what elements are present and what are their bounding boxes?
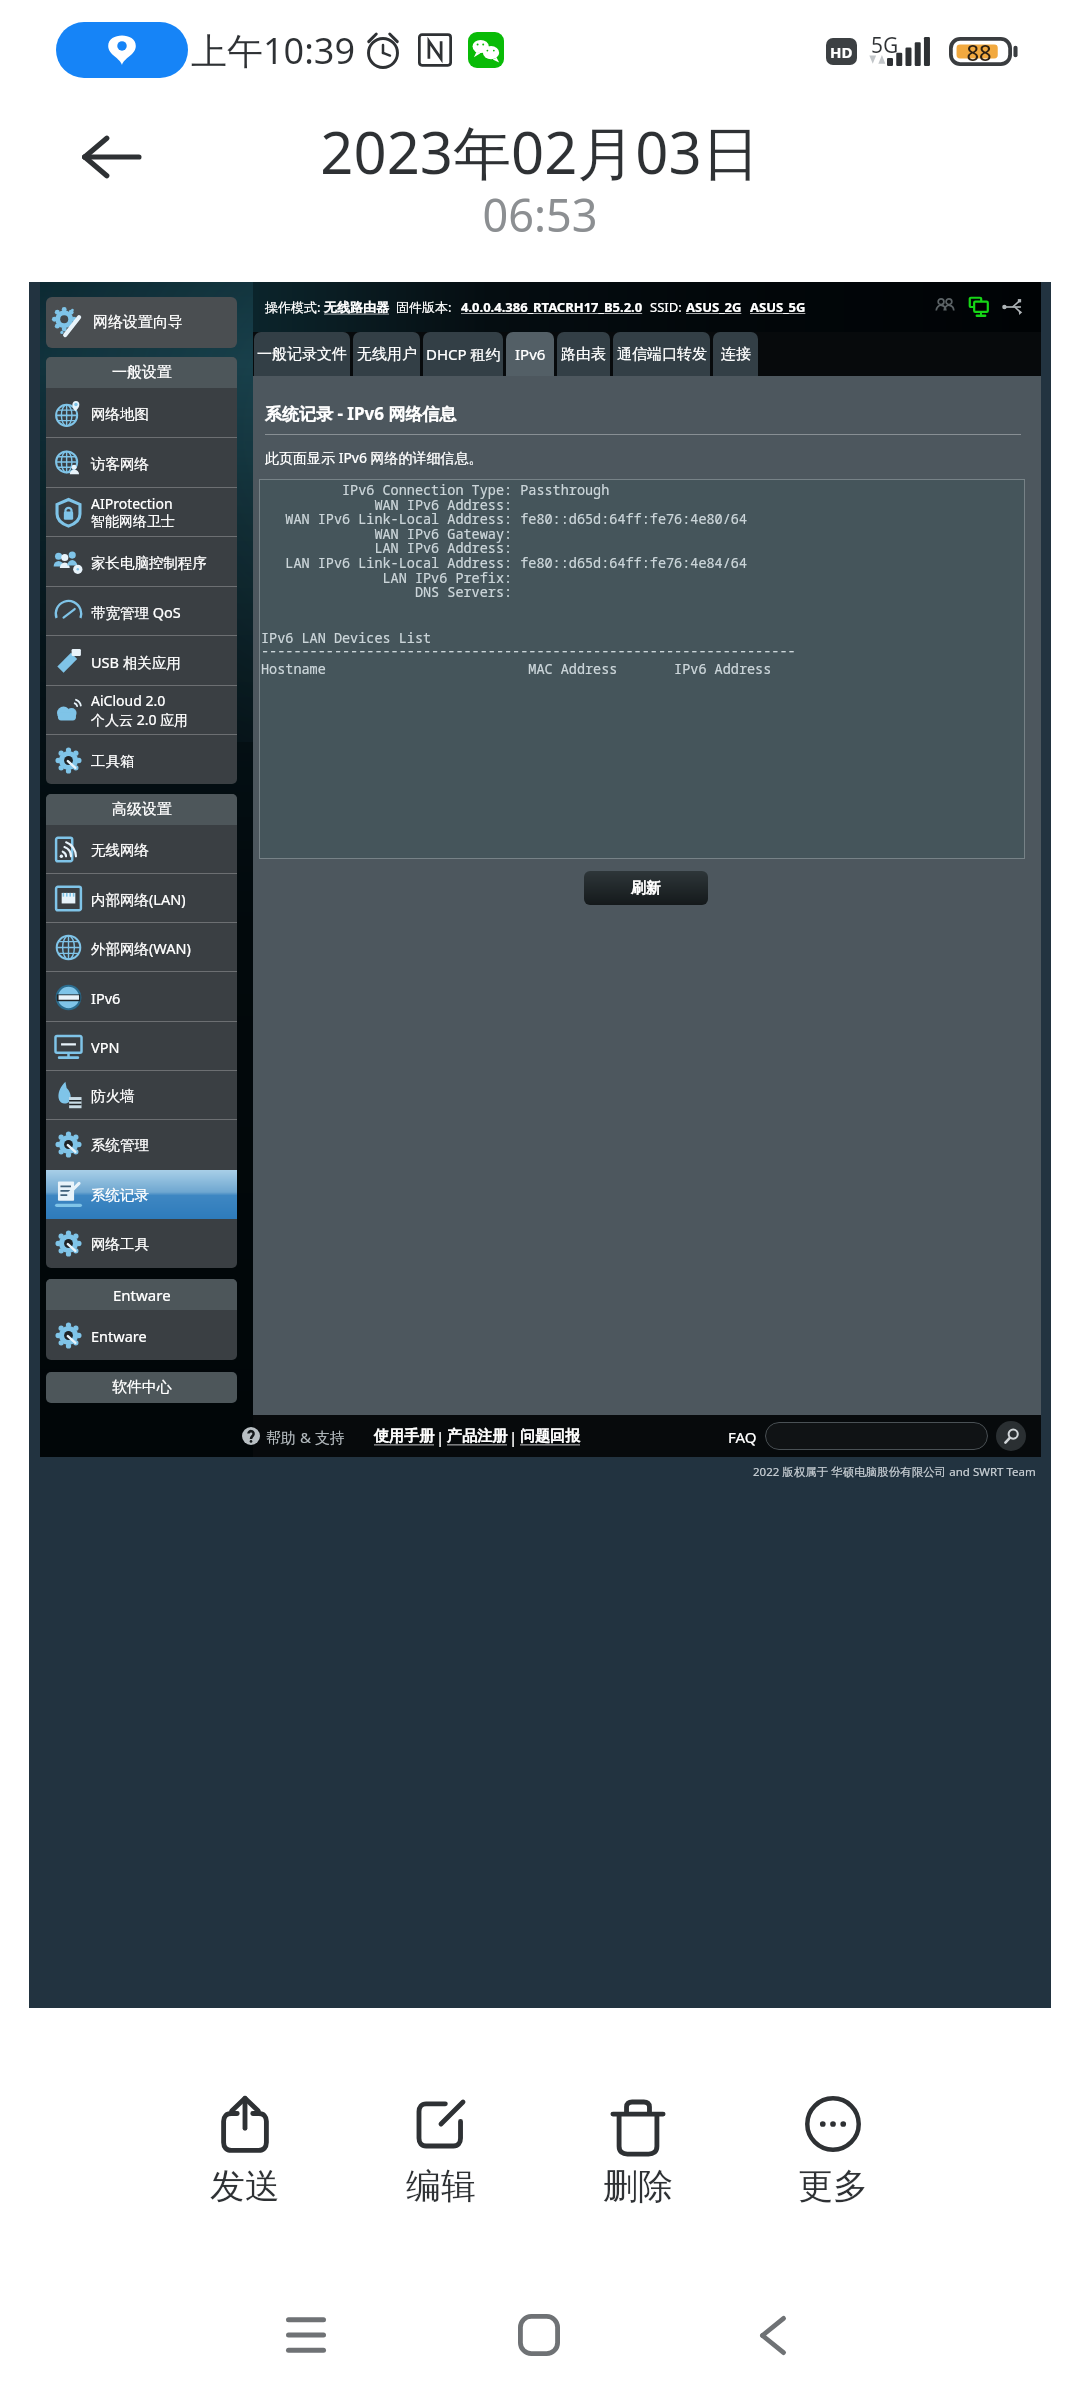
button[interactable]: 带宽管理 QoS <box>46 586 237 636</box>
button[interactable]: 通信端口转发 <box>613 332 710 376</box>
staticText: 4.0.0.4.386_RTACRH17_B5.2.0 <box>461 298 643 316</box>
staticText: 88 <box>966 37 992 66</box>
staticText: SSID: <box>650 298 686 316</box>
button[interactable]: 一般记录文件 <box>254 332 350 376</box>
staticText: 使用手册 <box>374 1427 434 1446</box>
staticText: IPv6 LAN Devices List <box>261 629 432 647</box>
staticText: 刷新 <box>631 879 661 898</box>
staticText: 高级设置 <box>112 800 172 819</box>
staticText: | <box>436 1427 445 1447</box>
button[interactable]: AIProtection <box>46 487 237 537</box>
button[interactable]: 刷新 <box>584 871 708 905</box>
button[interactable]: Entware <box>46 1279 237 1310</box>
button[interactable]: Back <box>58 113 164 201</box>
button[interactable]: Back <box>713 2275 833 2395</box>
button[interactable]: 网络地图 <box>46 388 237 438</box>
button[interactable]: 一般设置 <box>46 357 237 388</box>
button[interactable]: Search <box>996 1421 1026 1451</box>
staticText: 问题回报 <box>520 1427 580 1446</box>
button[interactable]: 路由表 <box>557 332 610 376</box>
button[interactable]: 家长电脑控制程序 <box>46 537 237 587</box>
staticText: AIProtection <box>91 494 173 513</box>
button[interactable]: 删除 <box>548 2078 728 2224</box>
staticText: 软件中心 <box>112 1378 172 1397</box>
button[interactable]: Home <box>479 2275 599 2395</box>
staticText: 网络地图 <box>91 405 149 423</box>
button[interactable]: 高级设置 <box>46 794 237 825</box>
staticText: 连接 <box>721 345 751 364</box>
button[interactable]: Entware <box>46 1310 237 1360</box>
staticText: ASUS_2G <box>686 298 742 316</box>
button[interactable]: 工具箱 <box>46 735 237 784</box>
staticText: Hostname MAC Address IPv6 Address <box>261 660 772 678</box>
button[interactable]: 无线用户 <box>353 332 420 376</box>
staticText: 工具箱 <box>91 752 135 770</box>
staticText: 外部网络(WAN) <box>91 938 191 958</box>
staticText: 一般记录文件 <box>257 345 347 364</box>
staticText: 发送 <box>210 2164 280 2208</box>
button[interactable]: IPv6 <box>46 973 237 1022</box>
staticText: Entware <box>113 1285 171 1305</box>
staticText: LAN IPv6 Prefix: <box>261 569 513 587</box>
staticText: 内部网络(LAN) <box>91 889 186 909</box>
button[interactable]: 内部网络(LAN) <box>46 874 237 923</box>
staticText: 网络工具 <box>91 1235 149 1253</box>
staticText: DHCP 租约 <box>426 344 501 364</box>
button[interactable]: 无线网络 <box>46 825 237 874</box>
staticText: | <box>509 1427 518 1447</box>
staticText: 无线用户 <box>357 345 417 364</box>
staticText: ASUS_5G <box>750 298 806 316</box>
staticText: HD <box>830 42 853 62</box>
staticText: 固件版本: <box>396 298 455 316</box>
button[interactable]: 网络设置向导 <box>46 297 237 348</box>
staticText: 带宽管理 QoS <box>91 602 181 622</box>
button[interactable]: 网络工具 <box>46 1219 237 1268</box>
staticText: IPv6 <box>91 988 121 1008</box>
button[interactable]: 系统记录 <box>46 1170 237 1219</box>
staticText: VPN <box>91 1037 120 1057</box>
button[interactable]: 访客网络 <box>46 438 237 488</box>
staticText: LAN IPv6 Link-Local Address: fe80::d65d:… <box>261 554 747 572</box>
staticText: 产品注册 <box>447 1427 507 1446</box>
staticText: 系统管理 <box>91 1136 149 1154</box>
button[interactable]: 外部网络(WAN) <box>46 923 237 972</box>
staticText: LAN IPv6 Address: <box>261 539 513 557</box>
staticText: USB 相关应用 <box>91 652 181 672</box>
button[interactable]: 防火墙 <box>46 1071 237 1120</box>
button[interactable]: AiCloud 2.0 <box>46 685 237 735</box>
staticText: 网络设置向导 <box>93 313 183 332</box>
staticText: 通信端口转发 <box>617 345 707 364</box>
button[interactable]: USB 相关应用 <box>46 636 237 686</box>
button[interactable]: IPv6 <box>506 332 554 376</box>
staticText: 2022 版权属于 华硕电脑股份有限公司 and SWRT Team <box>753 1464 1036 1480</box>
button[interactable]: DHCP 租约 <box>423 332 503 376</box>
button[interactable]: 软件中心 <box>46 1372 237 1403</box>
staticText: Entware <box>91 1326 147 1346</box>
staticText: 5G <box>871 31 899 60</box>
staticText: 无线网络 <box>91 841 149 859</box>
staticText: WAN IPv6 Gateway: <box>261 525 513 543</box>
button[interactable]: 系统管理 <box>46 1120 237 1169</box>
staticText: 系统记录 <box>91 1186 149 1204</box>
staticText: 帮助 & 支持 <box>266 1427 345 1447</box>
staticText: 智能网络卫士 <box>91 513 175 531</box>
staticText: 个人云 2.0 应用 <box>91 710 189 729</box>
staticText: 一般设置 <box>112 363 172 382</box>
staticText: IPv6 Connection Type: Passthrough <box>261 481 610 499</box>
staticText: 访客网络 <box>91 455 149 473</box>
staticText: ----------------------------------------… <box>261 642 796 660</box>
button[interactable]: 发送 <box>155 2078 335 2224</box>
staticText: 上午10:39 <box>191 26 356 75</box>
button[interactable]: VPN <box>46 1022 237 1071</box>
staticText: 2023年02月03日 <box>320 112 760 191</box>
staticText: WAN IPv6 Address: <box>261 496 513 514</box>
button[interactable]: 编辑 <box>351 2078 531 2224</box>
staticText: AiCloud 2.0 <box>91 691 166 710</box>
staticText: 编辑 <box>406 2164 476 2208</box>
staticText: 06:53 <box>482 184 598 245</box>
button[interactable]: 更多 <box>743 2078 923 2224</box>
button[interactable]: Recent apps <box>246 2275 366 2395</box>
staticText: 路由表 <box>561 345 606 364</box>
staticText: 家长电脑控制程序 <box>91 554 207 572</box>
button[interactable]: 连接 <box>713 332 758 376</box>
